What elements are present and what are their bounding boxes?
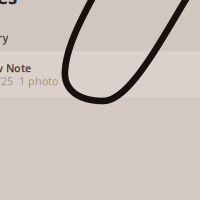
staticText: January xyxy=(0,31,8,45)
staticText: 12/25 1 photo xyxy=(0,74,58,88)
button[interactable]: New Note xyxy=(0,51,200,97)
staticText: New Note xyxy=(0,61,31,75)
staticText: Notes xyxy=(0,0,17,9)
